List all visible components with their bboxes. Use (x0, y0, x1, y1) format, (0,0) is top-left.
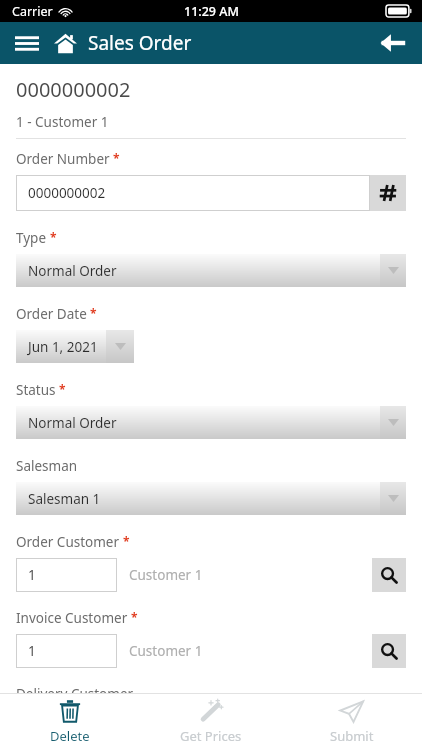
staticText: Order Customer (16, 533, 120, 551)
other: Submit (339, 700, 364, 723)
staticText: 11:29 AM (184, 3, 239, 20)
staticText: Normal Order (28, 414, 117, 432)
button[interactable]: Customer 1 (117, 634, 372, 668)
button[interactable]: Search order customer (372, 558, 406, 592)
button[interactable]: Search invoice customer (372, 634, 406, 668)
staticText: Order Date (16, 305, 87, 323)
staticText: Jun 1, 2021 (28, 338, 98, 356)
staticText: Invoice Customer (16, 609, 128, 627)
staticText: Submit (330, 727, 374, 745)
staticText: Customer 1 (129, 642, 203, 660)
button[interactable]: Get Prices (140, 694, 281, 750)
staticText: Customer 1 (129, 566, 203, 584)
button[interactable]: Delete (0, 694, 140, 750)
button[interactable]: Salesman 1 (16, 482, 406, 515)
staticText: * (123, 533, 130, 549)
staticText: 1 (28, 566, 36, 584)
button[interactable]: Menu (12, 30, 42, 56)
staticText: Status (16, 381, 56, 399)
button[interactable]: Normal Order (16, 254, 406, 287)
staticText: * (50, 229, 57, 245)
button[interactable]: 0000000002 (16, 175, 370, 211)
staticText: Get Prices (180, 727, 242, 745)
staticText: 1 - Customer 1 (16, 113, 109, 131)
button[interactable]: 1 (16, 634, 117, 668)
button[interactable]: Customer 1 (117, 558, 372, 592)
button[interactable]: Back (376, 26, 410, 60)
staticText: * (131, 609, 138, 625)
other: Delete (59, 699, 81, 723)
staticText: 0000000002 (16, 76, 131, 103)
button[interactable]: Home (50, 29, 80, 57)
staticText: Type (16, 229, 47, 247)
staticText: Order Number (16, 150, 110, 168)
button[interactable]: Jun 1, 2021 (16, 330, 134, 363)
button[interactable]: Submit (281, 694, 422, 750)
staticText: Delete (50, 727, 90, 745)
staticText: * (59, 381, 66, 397)
staticText: 1 (28, 642, 36, 660)
staticText: Delivery Customer (16, 685, 134, 693)
staticText: Carrier (12, 3, 53, 20)
other: Get Prices (199, 699, 223, 723)
staticText: Salesman 1 (28, 490, 101, 508)
staticText: Salesman (16, 457, 78, 475)
staticText: Normal Order (28, 262, 117, 280)
button[interactable]: Normal Order (16, 406, 406, 439)
staticText: Sales Order (88, 30, 192, 56)
staticText: * (113, 150, 120, 166)
staticText: 0000000002 (28, 184, 106, 202)
staticText: * (90, 305, 97, 321)
button[interactable]: Generate number (370, 175, 406, 211)
button[interactable]: 1 (16, 558, 117, 592)
